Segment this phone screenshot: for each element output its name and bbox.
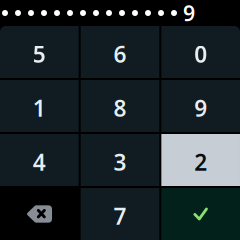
- button[interactable]: 9: [161, 80, 240, 132]
- staticText: 4: [33, 147, 46, 177]
- button[interactable]: 5: [0, 26, 79, 78]
- button[interactable]: 1: [0, 80, 79, 132]
- staticText: 9: [194, 93, 207, 123]
- button[interactable]: 2: [161, 134, 240, 186]
- button[interactable]: 4: [0, 134, 79, 186]
- staticText: 5: [33, 39, 46, 69]
- staticText: 9: [183, 0, 195, 27]
- staticText: 8: [113, 93, 126, 123]
- staticText: 6: [113, 39, 126, 69]
- staticText: 2: [194, 147, 207, 177]
- button[interactable]: 7: [81, 188, 159, 240]
- button[interactable]: 8: [81, 80, 159, 132]
- staticText: 7: [113, 201, 126, 231]
- staticText: 3: [113, 147, 126, 177]
- staticText: 1: [33, 93, 46, 123]
- button[interactable]: Enter: [161, 188, 240, 240]
- staticText: 0: [194, 39, 207, 69]
- button[interactable]: 6: [81, 26, 159, 78]
- button[interactable]: Delete: [0, 188, 79, 240]
- button[interactable]: 0: [161, 26, 240, 78]
- button[interactable]: 3: [81, 134, 159, 186]
